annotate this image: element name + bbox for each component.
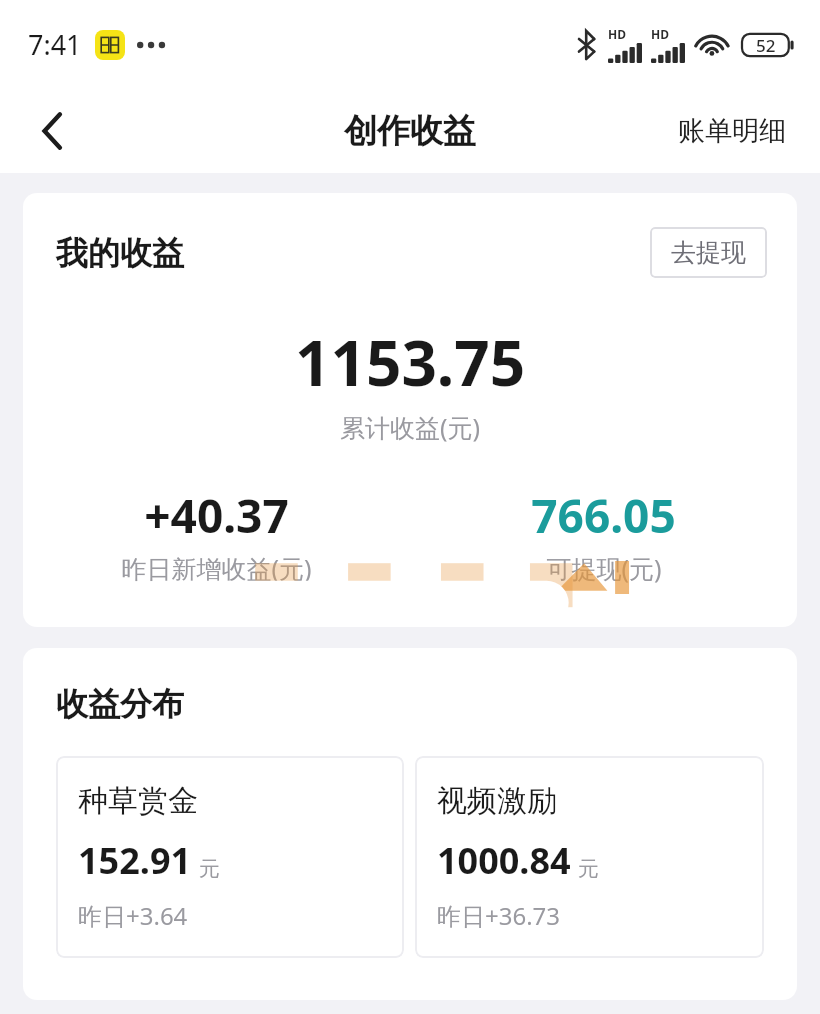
button[interactable]: 账单明细 [664,104,800,158]
staticText: 52 [756,34,776,57]
staticText: 1000.84 [437,836,571,885]
staticText: 7:41 [28,26,82,63]
staticText: 昨日+36.73 [437,899,561,932]
staticText: 元 [578,856,599,882]
staticText: 累计收益(元) [340,410,481,444]
staticText: 收益分布 [56,684,184,724]
button[interactable]: +40.37 [23,484,410,585]
staticText: HD [608,26,626,42]
staticText: HD [651,26,669,42]
staticText: 元 [199,856,220,882]
staticText: 1153.75 [295,320,526,404]
button[interactable]: 766.05 [410,484,797,585]
button[interactable]: 种草赏金 [56,756,404,958]
staticText: 昨日新增收益(元) [121,551,312,585]
staticText: 可提现(元) [546,551,662,585]
staticText: 152.91 [78,836,192,885]
button[interactable]: Back [22,101,82,161]
staticText: +40.37 [144,484,289,547]
staticText: 我的收益 [56,233,184,273]
staticText: 账单明细 [678,114,786,148]
button[interactable]: 去提现 [650,227,767,278]
staticText: 种草赏金 [78,782,198,820]
staticText: 昨日+3.64 [78,899,188,932]
staticText: 创作收益 [344,110,476,152]
staticText: 766.05 [531,484,676,547]
button[interactable]: 视频激励 [415,756,764,958]
staticText: 去提现 [671,237,746,268]
staticText: 视频激励 [437,782,557,820]
